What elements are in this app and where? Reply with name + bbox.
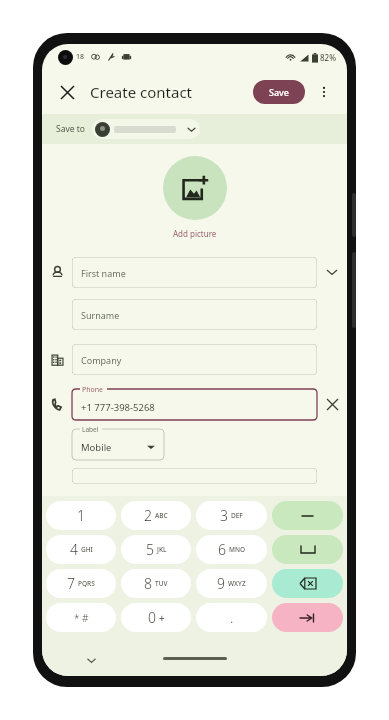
button[interactable]: 4	[46, 535, 116, 564]
button[interactable]: * #	[46, 603, 116, 632]
staticText: Mobile	[81, 441, 112, 454]
button[interactable]: Dash	[272, 501, 343, 530]
staticText: TUV	[155, 579, 168, 588]
button[interactable]: 6	[196, 535, 267, 564]
button[interactable]: Label	[72, 429, 164, 460]
button[interactable]: 9	[196, 569, 267, 598]
staticText: 4	[70, 540, 78, 559]
button[interactable]: Phone	[72, 389, 317, 420]
staticText: +	[159, 611, 165, 625]
staticText: Save to	[56, 123, 85, 135]
staticText: .	[230, 608, 234, 627]
staticText: GHI	[81, 545, 93, 554]
staticText: 2	[144, 506, 152, 525]
button[interactable]: .	[196, 603, 267, 632]
button[interactable]: Close	[50, 75, 84, 109]
button[interactable]: 3	[196, 501, 267, 530]
button[interactable]: 7	[46, 569, 116, 598]
button[interactable]: 1	[46, 501, 116, 530]
button[interactable]: 2	[121, 501, 191, 530]
staticText: 1	[77, 506, 85, 525]
button[interactable]: Hide keyboard	[82, 651, 100, 669]
staticText: +1 777-398-5268	[81, 401, 155, 414]
button[interactable]: Next	[272, 603, 343, 632]
staticText: Add picture	[173, 228, 217, 239]
staticText: JKL	[157, 545, 167, 554]
staticText: MNO	[229, 545, 246, 554]
staticText: 82%	[320, 52, 336, 63]
button[interactable]	[92, 119, 200, 139]
staticText: Phone	[82, 385, 104, 395]
staticText: Label	[82, 425, 99, 434]
staticText: 0	[148, 608, 156, 627]
staticText: Create contact	[90, 82, 193, 102]
button[interactable]: Add picture	[163, 156, 227, 220]
staticText: 7	[67, 574, 75, 593]
staticText: Save	[269, 86, 290, 98]
staticText: WXYZ	[228, 579, 246, 588]
button[interactable]: Company	[72, 344, 317, 375]
button[interactable]: Surname	[72, 299, 317, 330]
staticText: Company	[81, 354, 122, 366]
staticText: 6	[218, 540, 226, 559]
button[interactable]: 5	[121, 535, 191, 564]
staticText: 18	[76, 52, 85, 62]
button[interactable]: Backspace	[272, 569, 343, 598]
button[interactable]: 8	[121, 569, 191, 598]
staticText: PQRS	[78, 579, 95, 588]
button[interactable]: More options	[309, 77, 339, 107]
staticText: 5	[146, 540, 154, 559]
staticText: DEF	[231, 511, 243, 520]
staticText: Surname	[81, 309, 120, 321]
button[interactable]: 0	[121, 603, 191, 632]
staticText: ABC	[155, 511, 168, 520]
staticText: * #	[74, 611, 89, 625]
button[interactable]: Save	[253, 80, 305, 104]
button[interactable]: Clear phone number	[317, 386, 347, 422]
button[interactable]: Expand name fields	[317, 253, 347, 291]
staticText: 9	[217, 574, 225, 593]
button[interactable]: Space	[272, 535, 343, 564]
staticText: 3	[220, 506, 228, 525]
staticText: 8	[144, 574, 152, 593]
staticText: First name	[81, 267, 126, 279]
button[interactable]: First name	[72, 257, 317, 288]
